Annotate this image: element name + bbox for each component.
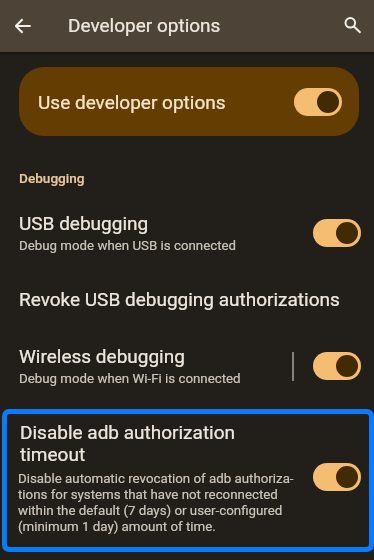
staticText: Revoke USB debugging authorizations: [19, 288, 340, 310]
staticText: Wireless debugging: [19, 345, 185, 367]
button[interactable]: Disable adb authorization timeout: [7, 414, 369, 547]
button[interactable]: Use developer options: [19, 67, 359, 136]
staticText: Disable automatic revocation of adb auth…: [18, 470, 294, 534]
button[interactable]: Toggle: [313, 219, 361, 247]
staticText: USB debugging: [19, 212, 149, 234]
staticText: Debugging: [19, 170, 85, 186]
button[interactable]: Back: [6, 6, 46, 46]
staticText: Use developer options: [38, 91, 294, 113]
staticText: Debug mode when USB is connected: [19, 238, 237, 254]
button[interactable]: USB debugging: [0, 202, 374, 264]
staticText: Disable adb authorization timeout: [20, 422, 236, 466]
button[interactable]: Search: [329, 6, 369, 46]
button[interactable]: Wireless debugging: [0, 335, 374, 397]
button[interactable]: Toggle: [313, 352, 361, 380]
button[interactable]: Toggle: [313, 463, 361, 491]
staticText: Developer options: [68, 14, 221, 36]
button[interactable]: Revoke USB debugging authorizations: [0, 276, 374, 322]
button[interactable]: Toggle: [294, 88, 342, 116]
staticText: Debug mode when Wi-Fi is connected: [19, 371, 241, 387]
